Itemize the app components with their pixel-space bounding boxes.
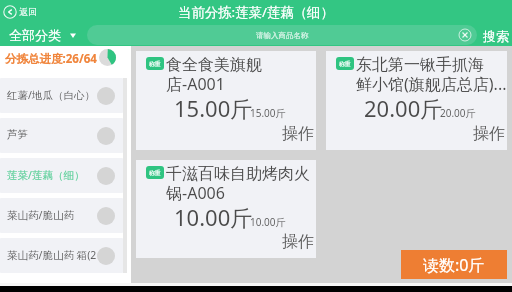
button[interactable]: 读数:0斤 — [401, 250, 507, 279]
button[interactable]: 芦笋 — [0, 118, 123, 153]
staticText: 15.00斤 — [250, 106, 286, 120]
staticText: 红薯/地瓜（白心） — [7, 88, 117, 102]
staticText: 芦笋 — [7, 128, 117, 141]
button[interactable]: 操作 — [282, 232, 314, 252]
button[interactable]: 请输入商品名称 — [87, 25, 477, 45]
staticText: 10.00斤 — [250, 215, 286, 229]
button[interactable]: 全部分类 — [9, 24, 76, 46]
button[interactable]: 操作 — [282, 124, 314, 144]
staticText: 菜山药/脆山药 箱(2 — [7, 248, 117, 262]
button[interactable]: 返回 — [3, 0, 37, 23]
staticText: 千滋百味自助烤肉火 锅-A006 — [166, 164, 318, 204]
staticText: 10.00斤 — [174, 202, 253, 232]
button[interactable]: 莲菜/莲藕（细） — [0, 158, 123, 193]
staticText: 搜索 — [483, 28, 509, 44]
button[interactable]: 称重 — [136, 160, 316, 258]
button[interactable]: 搜索 — [480, 25, 512, 46]
staticText: 20.00斤 — [440, 106, 476, 120]
staticText: 莲菜/莲藕（细） — [7, 168, 117, 182]
staticText: 食全食美旗舰 店-A001 — [166, 55, 318, 95]
button[interactable]: 红薯/地瓜（白心） — [0, 78, 123, 113]
staticText: 请输入商品名称 — [256, 31, 309, 40]
button[interactable]: 菜山药/脆山药 — [0, 198, 123, 233]
button[interactable]: 称重 — [136, 51, 316, 150]
button[interactable]: 称重 — [326, 51, 507, 150]
staticText: 读数:0斤 — [423, 254, 485, 276]
staticText: 操作 — [282, 124, 314, 144]
staticText: 返回 — [19, 6, 37, 17]
button[interactable]: 菜山药/脆山药 箱(2 — [0, 238, 123, 273]
staticText: 称重 — [149, 169, 161, 176]
staticText: 菜山药/脆山药 — [7, 208, 117, 222]
staticText: 东北第一锹手抓海 鲜小馆(旗舰店总店)... — [356, 55, 509, 95]
button[interactable]: 操作 — [473, 124, 505, 144]
staticText: 全部分类 — [9, 27, 61, 43]
staticText: 分拣总进度:26/64 — [5, 51, 97, 67]
staticText: 15.00斤 — [174, 93, 253, 123]
button[interactable]: 清除 — [458, 28, 472, 42]
staticText: 操作 — [473, 124, 505, 144]
staticText: 当前分拣:莲菜/莲藕（细） — [178, 3, 334, 21]
staticText: 称重 — [339, 60, 351, 67]
staticText: 操作 — [282, 232, 314, 252]
staticText: 称重 — [149, 60, 161, 67]
staticText: 20.00斤 — [364, 93, 443, 123]
